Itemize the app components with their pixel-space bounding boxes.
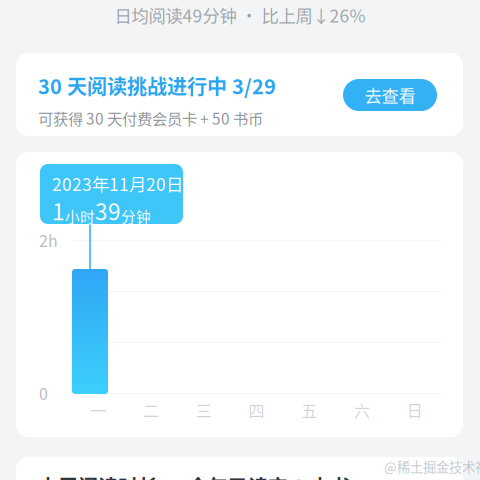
staticText: 本周阅读时长 · 今年已读完 3 本书 <box>38 471 350 480</box>
staticText: 一 <box>90 398 106 422</box>
staticText: 去查看 <box>364 82 415 108</box>
staticText: 四 <box>248 398 264 422</box>
button[interactable]: 去查看 <box>343 79 437 111</box>
staticText: 日均阅读49分钟 · 比上周↓26% <box>114 2 365 28</box>
staticText: 2023年11月20日 <box>52 171 183 196</box>
staticText: 三 <box>196 398 212 422</box>
staticText: 六 <box>354 398 370 422</box>
staticText: @稀土掘金技术社区 <box>384 457 480 476</box>
staticText: 1 <box>52 194 65 227</box>
staticText: 小时 <box>65 206 95 227</box>
staticText: 日 <box>407 398 423 422</box>
staticText: 0 <box>39 381 48 405</box>
staticText: 30 天阅读挑战进行中 3/29 <box>38 71 276 100</box>
staticText: 分钟 <box>121 206 151 227</box>
staticText: 可获得 30 天付费会员卡 + 50 书币 <box>38 107 263 129</box>
staticText: 2h <box>39 228 58 252</box>
staticText: 二 <box>143 398 159 422</box>
staticText: 39 <box>95 194 121 227</box>
staticText: 五 <box>301 398 317 422</box>
